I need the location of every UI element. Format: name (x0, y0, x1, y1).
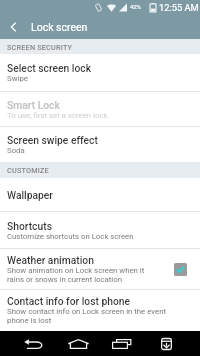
staticText: To use, first set a screen lock. (7, 111, 110, 120)
button[interactable]: Shortcuts (0, 212, 200, 248)
staticText: Lock screen (31, 21, 88, 33)
staticText: CUSTOMIZE (7, 166, 49, 174)
staticText: Contact info for lost phone (7, 295, 131, 307)
button[interactable]: Home (56, 331, 100, 356)
button[interactable]: Capture plus (144, 331, 188, 356)
staticText: 12:55 AM (159, 2, 199, 13)
staticText: 42% (130, 4, 141, 11)
staticText: Screen swipe effect (7, 134, 98, 146)
staticText: Soda (7, 146, 25, 155)
staticText: Wallpaper (7, 189, 53, 201)
staticText: Show animation on Lock screen when it (7, 266, 145, 275)
button[interactable]: Contact info for lost phone (0, 290, 200, 330)
staticText: phone is lost (7, 316, 52, 325)
button[interactable]: Smart Lock (0, 92, 200, 126)
button[interactable]: Back (11, 331, 56, 356)
button[interactable]: Back (0, 14, 26, 39)
staticText: Swipe (7, 74, 28, 83)
staticText: rains or snows in current location (7, 275, 123, 284)
button[interactable]: Screen swipe effect (0, 127, 200, 162)
staticText: Customize shortcuts on Lock screen (7, 232, 134, 241)
button[interactable]: Wallpaper (0, 178, 200, 211)
button[interactable]: Recent apps (100, 331, 144, 356)
button[interactable]: Select screen lock (0, 54, 200, 91)
button[interactable]: Weather animation checkbox (174, 263, 187, 276)
staticText: Shortcuts (7, 220, 52, 232)
staticText: Show contact info on Lock screen in the … (7, 307, 166, 316)
staticText: Weather animation (7, 254, 94, 266)
button[interactable]: Weather animation (0, 249, 200, 289)
staticText: Select screen lock (7, 62, 92, 74)
staticText: Smart Lock (7, 99, 60, 111)
staticText: SCREEN SECURITY (7, 43, 73, 51)
